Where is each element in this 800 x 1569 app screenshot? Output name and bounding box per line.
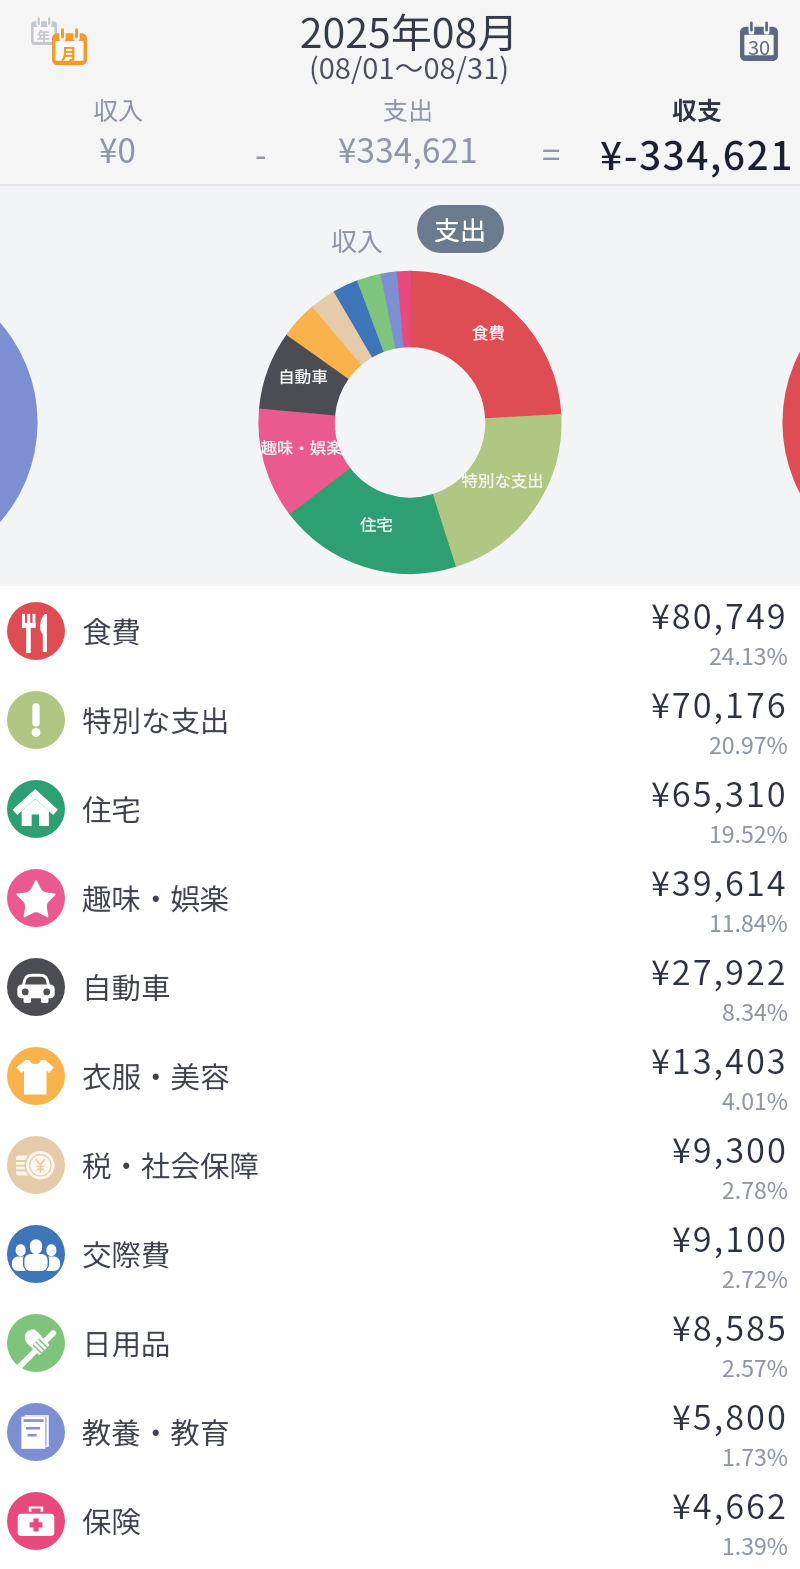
staticText: 支出 [434, 210, 487, 248]
staticText: 20.97% [709, 727, 788, 760]
staticText: (08/01〜08/31) [9, 45, 800, 87]
button[interactable]: 自動車 [0, 942, 800, 1031]
button[interactable]: 収入 [8, 91, 228, 175]
staticText: 11.84% [709, 905, 788, 938]
staticText: 食費 [82, 609, 142, 652]
staticText: ¥0 [99, 125, 137, 173]
staticText: 特別な支出 [82, 698, 230, 741]
staticText: 食費 [472, 320, 505, 344]
staticText: 年 [37, 26, 51, 45]
staticText: ¥39,614 [651, 857, 788, 906]
staticText: ¥8,585 [672, 1302, 788, 1351]
button[interactable]: 住宅 [0, 764, 800, 853]
button[interactable]: 税・社会保障 [0, 1120, 800, 1209]
staticText: 趣味・娯楽 [82, 876, 230, 919]
staticText: ¥13,403 [651, 1035, 788, 1084]
staticText: - [255, 129, 267, 177]
staticText: 19.52% [709, 816, 788, 849]
staticText: ¥4,662 [672, 1480, 788, 1529]
button[interactable]: 収入 [325, 210, 390, 270]
staticText: 保険 [82, 1499, 142, 1542]
staticText: 住宅 [360, 512, 393, 536]
staticText: 1.39% [722, 1528, 788, 1561]
staticText: 自動車 [278, 364, 328, 388]
button[interactable]: 年月の切り替え [24, 14, 94, 72]
staticText: 税・社会保障 [82, 1143, 260, 1186]
button[interactable]: 保険 [0, 1476, 800, 1565]
staticText: 2.78% [722, 1172, 788, 1205]
staticText: 月 [61, 41, 78, 64]
staticText: 収入 [93, 91, 144, 127]
staticText: 24.13% [709, 638, 788, 671]
staticText: ¥9,100 [672, 1213, 788, 1262]
button[interactable]: 支出 [417, 205, 504, 253]
staticText: 収入 [331, 221, 384, 259]
button[interactable]: 衣服・美容 [0, 1031, 800, 1120]
staticText: ¥80,749 [651, 590, 788, 639]
staticText: 自動車 [82, 965, 171, 1008]
button[interactable]: 交際費 [0, 1209, 800, 1298]
staticText: 8.34% [722, 994, 788, 1027]
staticText: 特別な支出 [461, 468, 544, 492]
staticText: ¥27,922 [651, 946, 788, 995]
staticText: 支出 [383, 91, 434, 127]
staticText: 教養・教育 [82, 1410, 230, 1453]
button[interactable]: 日用品 [0, 1298, 800, 1387]
staticText: 住宅 [82, 787, 142, 830]
staticText: 日用品 [82, 1321, 171, 1364]
staticText: 2.57% [722, 1350, 788, 1383]
staticText: 2.72% [722, 1261, 788, 1294]
button[interactable]: 食費 [0, 586, 800, 675]
staticText: 衣服・美容 [82, 1054, 230, 1097]
button[interactable]: 趣味・娯楽 [0, 853, 800, 942]
staticText: ¥9,300 [672, 1124, 788, 1173]
staticText: 4.01% [722, 1083, 788, 1116]
staticText: ¥-334,621 [600, 125, 794, 181]
staticText: ¥65,310 [651, 768, 788, 817]
staticText: 趣味・娯楽 [260, 435, 343, 459]
staticText: = [542, 129, 561, 177]
staticText: 収支 [672, 91, 723, 127]
staticText: ¥5,800 [672, 1391, 788, 1440]
staticText: 交際費 [82, 1232, 171, 1275]
button[interactable]: 支出 [298, 91, 518, 175]
staticText: 2025年08月 [9, 0, 800, 59]
button[interactable]: 収支 [587, 91, 800, 183]
button[interactable]: 特別な支出 [0, 675, 800, 764]
button[interactable]: 日付を選択 [729, 13, 789, 71]
button[interactable]: 教養・教育 [0, 1387, 800, 1476]
staticText: 30 [748, 32, 771, 61]
staticText: 1.73% [722, 1439, 788, 1472]
staticText: ¥334,621 [338, 125, 478, 173]
staticText: ¥70,176 [651, 679, 788, 728]
